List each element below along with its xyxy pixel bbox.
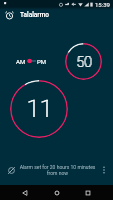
staticText: 11 bbox=[26, 95, 53, 123]
staticText: Talalarmo bbox=[20, 11, 50, 19]
staticText: 11 bbox=[27, 95, 54, 123]
staticText: AM bbox=[16, 58, 26, 65]
button[interactable]: More options bbox=[97, 163, 111, 177]
staticText: 50 bbox=[77, 54, 93, 70]
staticText: PM bbox=[37, 58, 47, 65]
button[interactable]: 50 bbox=[65, 43, 102, 80]
button[interactable]: Back bbox=[18, 186, 32, 200]
button[interactable]: AM bbox=[16, 56, 47, 66]
staticText: 50 bbox=[76, 54, 92, 70]
button[interactable]: Talalarmo bbox=[0, 0, 113, 25]
button[interactable]: Recents bbox=[81, 186, 95, 200]
staticText: Alarm set for 20 hours 10 minutes from n… bbox=[18, 164, 97, 176]
button[interactable]: Home bbox=[50, 186, 64, 200]
staticText: 15:39 bbox=[95, 1, 110, 8]
button[interactable]: 11 bbox=[10, 80, 68, 138]
button[interactable]: Alarm off bbox=[4, 163, 18, 177]
